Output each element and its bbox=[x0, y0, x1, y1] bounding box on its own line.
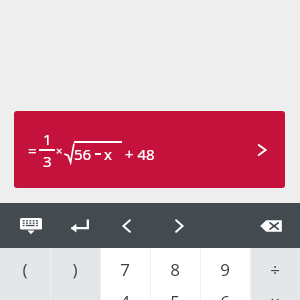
button[interactable]: Backspace bbox=[254, 209, 288, 243]
button[interactable]: Move left bbox=[110, 209, 144, 243]
button[interactable]: ÷ bbox=[250, 248, 300, 290]
other: Next bbox=[253, 141, 271, 159]
button[interactable]: 9 bbox=[200, 248, 250, 290]
button[interactable]: Enter bbox=[62, 209, 96, 243]
staticText: 56 bbox=[74, 144, 92, 164]
staticText: ( bbox=[22, 258, 28, 281]
staticText: 1 bbox=[43, 129, 52, 149]
button[interactable]: = bbox=[14, 111, 285, 188]
staticText: ) bbox=[72, 258, 78, 281]
button[interactable]: ) bbox=[50, 248, 100, 290]
button[interactable]: 6 bbox=[200, 290, 250, 300]
button[interactable]: × bbox=[250, 290, 300, 300]
staticText: ÷ bbox=[270, 258, 280, 281]
staticText: = bbox=[28, 140, 37, 160]
button[interactable]: Change keyboard bbox=[14, 209, 48, 243]
button[interactable]: 5 bbox=[150, 290, 200, 300]
button[interactable]: 7 bbox=[100, 248, 150, 290]
staticText: 5 bbox=[170, 290, 180, 300]
staticText: 6 bbox=[220, 290, 230, 300]
button[interactable]: 4 bbox=[100, 290, 150, 300]
button[interactable]: ( bbox=[0, 248, 50, 290]
staticText: × bbox=[56, 143, 63, 158]
staticText: 3 bbox=[43, 151, 52, 171]
staticText: × bbox=[270, 290, 280, 300]
button[interactable]: Move right bbox=[162, 209, 196, 243]
staticText: 9 bbox=[220, 258, 230, 281]
staticText: x bbox=[104, 144, 112, 164]
staticText: 4 bbox=[120, 290, 130, 300]
staticText: + 48 bbox=[125, 144, 155, 164]
staticText: 8 bbox=[170, 258, 180, 281]
button[interactable]: 8 bbox=[150, 248, 200, 290]
staticText: 7 bbox=[120, 258, 130, 281]
